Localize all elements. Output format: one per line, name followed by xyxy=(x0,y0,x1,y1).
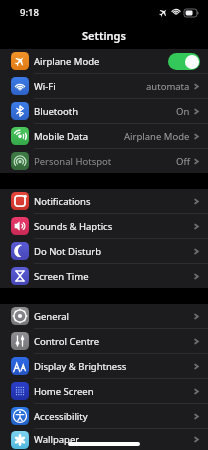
button[interactable]: Home Screen xyxy=(0,379,208,404)
button[interactable]: Control Centre xyxy=(0,329,208,354)
button[interactable]: Notifications xyxy=(0,189,208,214)
staticText: Home Screen xyxy=(34,385,94,398)
staticText: automata xyxy=(146,80,190,93)
button[interactable]: Personal Hotspot xyxy=(0,149,208,173)
button[interactable]: Display & Brightness xyxy=(0,354,208,379)
staticText: On xyxy=(176,105,190,118)
staticText: Off xyxy=(176,155,190,168)
staticText: Personal Hotspot xyxy=(34,155,112,168)
staticText: 9:18 xyxy=(20,6,39,19)
staticText: Bluetooth xyxy=(34,105,79,118)
button[interactable]: General xyxy=(0,304,208,329)
staticText: General xyxy=(34,310,70,323)
button[interactable]: Do Not Disturb xyxy=(0,239,208,264)
staticText: Notifications xyxy=(34,195,91,208)
staticText: Settings xyxy=(82,28,126,43)
staticText: Do Not Disturb xyxy=(34,245,102,258)
button[interactable]: Accessibility xyxy=(0,404,208,429)
staticText: Wallpaper xyxy=(34,433,80,446)
button[interactable]: Mobile Data xyxy=(0,124,208,149)
button[interactable]: Screen Time xyxy=(0,264,208,288)
button[interactable]: Airplane Mode xyxy=(0,49,208,74)
button[interactable]: Sounds & Haptics xyxy=(0,214,208,239)
staticText: Sounds & Haptics xyxy=(34,220,113,233)
staticText: Display & Brightness xyxy=(34,360,127,373)
staticText: Airplane Mode xyxy=(34,55,100,68)
button[interactable]: Bluetooth xyxy=(0,99,208,124)
staticText: Mobile Data xyxy=(34,130,88,143)
button[interactable]: Wallpaper xyxy=(0,429,208,450)
button[interactable]: Wi-Fi xyxy=(0,74,208,99)
staticText: Control Centre xyxy=(34,335,100,348)
button[interactable]: Airplane Mode toggle xyxy=(168,53,200,70)
staticText: Screen Time xyxy=(34,270,89,283)
staticText: Accessibility xyxy=(34,410,88,423)
staticText: Wi-Fi xyxy=(34,80,56,93)
staticText: Airplane Mode xyxy=(124,130,190,143)
